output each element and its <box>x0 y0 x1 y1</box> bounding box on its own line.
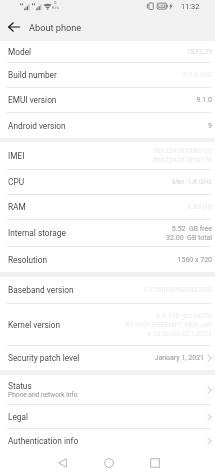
staticText: 9.1.0 <box>196 96 212 104</box>
staticText: 861234567890123 861234567890124 <box>152 147 212 164</box>
staticText: 4.9.148-gcc4a27e #1 SMP PREEMPT Mon Jan … <box>125 312 212 338</box>
button[interactable]: Security patch level <box>0 346 215 370</box>
staticText: Security patch level <box>8 353 80 363</box>
staticText: January 1, 2021 <box>154 354 204 362</box>
staticText: 9.1.0.360 <box>182 71 212 79</box>
button[interactable]: Authentication info <box>0 429 215 452</box>
staticText: 3.69 GB <box>187 203 212 211</box>
staticText: 21C20B369S000C000 <box>143 286 212 294</box>
staticText: Authentication info <box>8 436 79 446</box>
staticText: 82 <box>159 3 164 8</box>
button[interactable]: Recent apps <box>145 452 165 473</box>
button[interactable]: CPU <box>0 170 215 194</box>
staticText: Phone and network info <box>8 391 78 399</box>
button[interactable]: Resolution <box>0 247 215 272</box>
staticText: 9 <box>208 122 212 130</box>
button[interactable]: Model <box>0 41 215 62</box>
staticText: Android version <box>8 121 66 131</box>
button[interactable]: Kernel version <box>0 304 215 345</box>
staticText: 11:32 <box>181 2 200 11</box>
staticText: EMUI version <box>8 95 57 105</box>
staticText: About phone <box>29 22 82 33</box>
staticText: CPU <box>8 177 25 187</box>
staticText: Min 1.8 GHz <box>172 178 212 186</box>
staticText: K/s <box>52 5 59 10</box>
button[interactable]: Baseband version <box>0 277 215 303</box>
staticText: 0 <box>54 0 57 5</box>
staticText: Internal storage <box>8 228 66 238</box>
staticText: Model <box>8 47 32 57</box>
staticText: Status <box>8 381 32 391</box>
button[interactable]: Legal <box>0 405 215 428</box>
staticText: 1560 x 720 <box>177 256 212 264</box>
button[interactable]: IMEI <box>0 142 215 169</box>
staticText: 5.52 GB free 32.00 GB total <box>166 225 212 242</box>
button[interactable]: Android version <box>0 113 215 138</box>
staticText: Resolution <box>8 255 48 265</box>
staticText: RAM <box>8 202 26 212</box>
button[interactable]: Home <box>99 452 119 473</box>
staticText: Legal <box>8 412 29 422</box>
button[interactable]: Back <box>0 13 28 41</box>
staticText: Build number <box>8 70 57 80</box>
button[interactable]: Build number <box>0 63 215 87</box>
staticText: IMEI <box>8 151 25 161</box>
button[interactable]: EMUI version <box>0 88 215 112</box>
button[interactable]: Back <box>52 452 72 473</box>
staticText: Baseband version <box>8 285 74 295</box>
button[interactable]: Internal storage <box>0 220 215 246</box>
staticText: CLT-L29 <box>187 48 212 56</box>
button[interactable]: Status <box>0 375 215 404</box>
staticText: Kernel version <box>8 320 61 330</box>
button[interactable]: RAM <box>0 195 215 219</box>
